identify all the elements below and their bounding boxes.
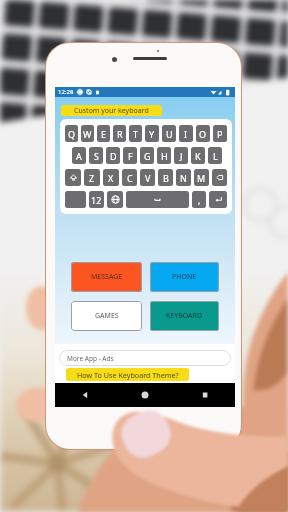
staticText: O <box>199 128 207 140</box>
button[interactable]: Back <box>55 383 115 407</box>
button[interactable]: E <box>97 125 110 142</box>
staticText: GAMES <box>95 311 119 321</box>
staticText: Y <box>149 128 155 140</box>
button[interactable]: Space <box>126 191 189 208</box>
button[interactable]: Emoji <box>65 191 86 208</box>
button[interactable]: Y <box>145 125 159 142</box>
button[interactable]: A <box>72 147 86 164</box>
button[interactable]: MESSAGE <box>71 262 142 292</box>
button[interactable]: G <box>140 147 154 164</box>
button[interactable]: P <box>213 125 227 142</box>
staticText: MESSAGE <box>91 272 123 282</box>
button[interactable]: F <box>123 147 137 164</box>
staticText: T <box>133 128 139 140</box>
staticText: Custom your keyboard <box>74 106 149 116</box>
button[interactable]: , <box>192 191 206 208</box>
button[interactable]: Language <box>107 191 123 208</box>
button[interactable]: X <box>103 169 119 186</box>
button[interactable]: Backspace <box>212 169 227 186</box>
button[interactable]: Shift <box>65 169 81 186</box>
staticText: I <box>184 128 188 140</box>
staticText: L <box>213 150 218 162</box>
staticText: , <box>198 194 201 206</box>
button[interactable]: S <box>89 147 103 164</box>
staticText: Q <box>68 128 76 140</box>
button[interactable]: L <box>208 147 222 164</box>
button[interactable]: Recents <box>175 383 235 407</box>
staticText: How To Use Keyboard Theme? <box>77 370 179 380</box>
button[interactable]: B <box>158 169 173 186</box>
button[interactable]: Z <box>84 169 100 186</box>
button[interactable]: Enter <box>209 191 227 208</box>
button[interactable]: J <box>174 147 188 164</box>
staticText: N <box>180 172 187 184</box>
staticText: F <box>128 150 133 162</box>
button[interactable]: V <box>140 169 155 186</box>
button[interactable]: H <box>157 147 171 164</box>
button[interactable]: 12 <box>89 191 104 208</box>
staticText: C <box>127 172 133 184</box>
staticText: P <box>217 128 223 140</box>
button[interactable]: I <box>179 125 193 142</box>
button[interactable]: More App - Ads <box>59 350 231 366</box>
staticText: M <box>197 172 206 184</box>
button[interactable]: GAMES <box>71 301 142 331</box>
button[interactable]: O <box>196 125 210 142</box>
button[interactable]: U <box>162 125 176 142</box>
staticText: X <box>108 172 114 184</box>
staticText: D <box>110 150 117 162</box>
staticText: PHONE <box>172 272 197 282</box>
button[interactable]: T <box>129 125 142 142</box>
button[interactable]: Custom your keyboard <box>61 105 162 116</box>
button[interactable]: PHONE <box>150 262 219 292</box>
staticText: B <box>163 172 169 184</box>
button[interactable]: M <box>194 169 209 186</box>
button[interactable]: Home <box>115 383 175 407</box>
button[interactable]: R <box>113 125 126 142</box>
staticText: 12:28 <box>58 88 74 96</box>
staticText: A <box>76 150 82 162</box>
staticText: 12 <box>91 194 102 206</box>
staticText: J <box>180 150 183 162</box>
staticText: E <box>101 128 107 140</box>
staticText: S <box>94 150 99 162</box>
button[interactable]: Q <box>65 125 78 142</box>
button[interactable]: W <box>81 125 94 142</box>
button[interactable]: KEYBOARD <box>150 301 219 331</box>
button[interactable]: How To Use Keyboard Theme? <box>66 368 189 381</box>
staticText: H <box>161 150 168 162</box>
staticText: G <box>144 150 151 162</box>
button[interactable]: K <box>191 147 205 164</box>
button[interactable]: N <box>176 169 191 186</box>
staticText: U <box>166 128 173 140</box>
staticText: Z <box>89 172 95 184</box>
staticText: W <box>83 128 92 140</box>
staticText: More App - Ads <box>67 354 114 363</box>
staticText: K <box>195 150 201 162</box>
staticText: KEYBOARD <box>166 311 203 321</box>
button[interactable]: D <box>106 147 120 164</box>
button[interactable]: C <box>122 169 137 186</box>
staticText: V <box>145 172 151 184</box>
staticText: R <box>117 128 123 140</box>
